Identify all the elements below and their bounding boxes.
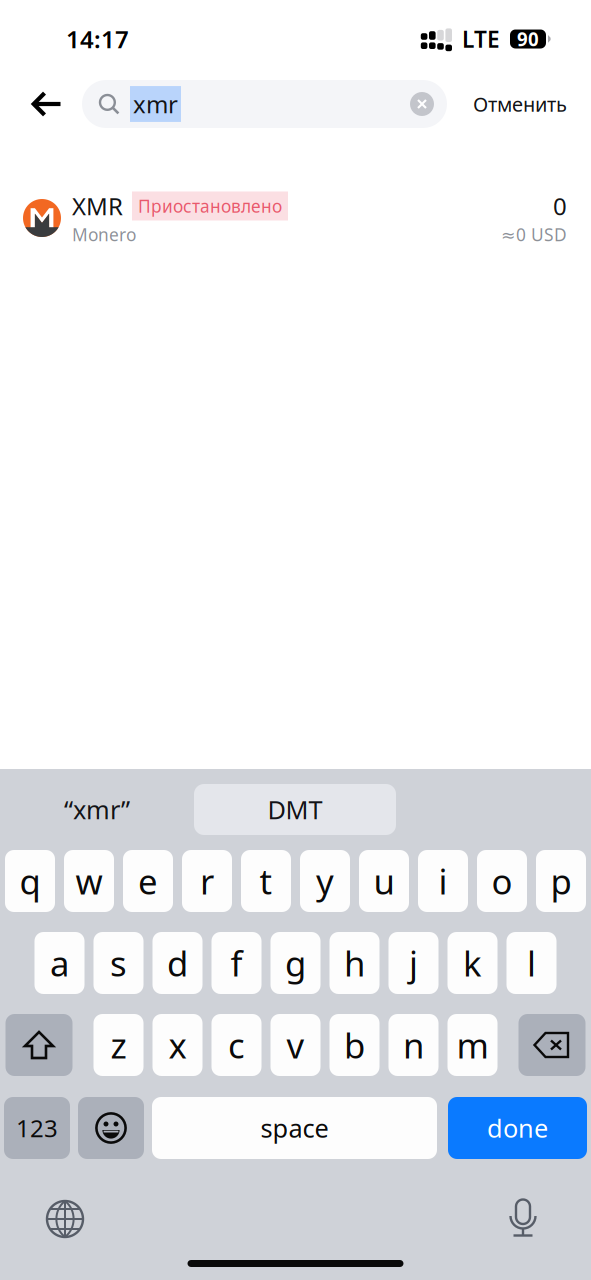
staticText: k [463, 940, 482, 986]
staticText: v [286, 1022, 304, 1068]
staticText: 14:17 [66, 23, 129, 55]
staticText: b [344, 1022, 365, 1068]
staticText: t [259, 858, 272, 904]
button[interactable]: j [388, 932, 438, 994]
button[interactable]: Back [23, 80, 71, 128]
button[interactable]: h [329, 932, 379, 994]
staticText: y [316, 858, 334, 904]
staticText: “xmr” [64, 793, 130, 826]
staticText: j [409, 940, 418, 986]
button[interactable]: done [448, 1097, 587, 1159]
button[interactable]: r [182, 850, 232, 912]
button[interactable]: e [123, 850, 173, 912]
staticText: f [230, 940, 242, 986]
staticText: 0 [553, 190, 567, 222]
staticText: xmr [133, 88, 178, 120]
button[interactable]: q [5, 850, 55, 912]
button[interactable]: x [152, 1014, 202, 1076]
staticText: Отменить [473, 91, 567, 117]
staticText: s [110, 940, 127, 986]
staticText: d [167, 940, 188, 986]
button[interactable]: Отменить [461, 81, 579, 127]
button[interactable]: DMT [194, 784, 396, 835]
button[interactable]: d [152, 932, 202, 994]
button[interactable]: “xmr” [0, 783, 194, 835]
staticText: p [550, 858, 571, 904]
button[interactable]: s [93, 932, 143, 994]
button[interactable]: y [300, 850, 350, 912]
staticText: o [491, 858, 512, 904]
button[interactable]: Change keyboard [41, 1195, 89, 1243]
staticText: u [373, 858, 394, 904]
button[interactable]: XMR [0, 187, 591, 249]
button[interactable]: p [536, 850, 586, 912]
button[interactable]: m [447, 1014, 497, 1076]
staticText: 90 [517, 27, 539, 51]
button[interactable]: f [211, 932, 261, 994]
staticText: m [456, 1022, 488, 1068]
staticText: q [19, 858, 40, 904]
staticText: XMR [72, 190, 123, 222]
button[interactable]: z [93, 1014, 143, 1076]
button[interactable]: t [241, 850, 291, 912]
button[interactable]: o [477, 850, 527, 912]
staticText: g [285, 940, 306, 986]
button[interactable]: 123 [4, 1097, 70, 1159]
staticText: x [168, 1022, 186, 1068]
staticText: n [403, 1022, 424, 1068]
staticText: done [487, 1111, 548, 1145]
staticText: l [527, 940, 536, 986]
button[interactable]: i [418, 850, 468, 912]
button[interactable]: Dictate [499, 1195, 547, 1243]
button[interactable] [5, 1014, 72, 1076]
button[interactable]: b [329, 1014, 379, 1076]
button[interactable]: a [34, 932, 84, 994]
staticText: Приостановлено [138, 194, 282, 217]
button[interactable]: l [506, 932, 556, 994]
button[interactable]: Clear [404, 82, 440, 126]
button[interactable] [518, 1014, 585, 1076]
button[interactable]: v [270, 1014, 320, 1076]
staticText: space [260, 1111, 328, 1145]
staticText: a [50, 940, 69, 986]
button[interactable]: c [211, 1014, 261, 1076]
staticText: ≈0 USD [501, 223, 567, 246]
button[interactable]: u [359, 850, 409, 912]
staticText: h [344, 940, 365, 986]
staticText: r [200, 858, 214, 904]
staticText: LTE [462, 24, 500, 54]
staticText: i [438, 858, 447, 904]
button[interactable]: w [64, 850, 114, 912]
staticText: w [75, 858, 102, 904]
staticText: DMT [267, 793, 322, 826]
staticText: 123 [16, 1112, 58, 1144]
button[interactable]: g [270, 932, 320, 994]
button[interactable]: space [152, 1097, 437, 1159]
staticText: z [110, 1022, 126, 1068]
button[interactable] [78, 1097, 144, 1159]
button[interactable]: k [447, 932, 497, 994]
staticText: Monero [72, 223, 136, 246]
staticText: c [228, 1022, 245, 1068]
button[interactable]: n [388, 1014, 438, 1076]
staticText: e [138, 858, 158, 904]
